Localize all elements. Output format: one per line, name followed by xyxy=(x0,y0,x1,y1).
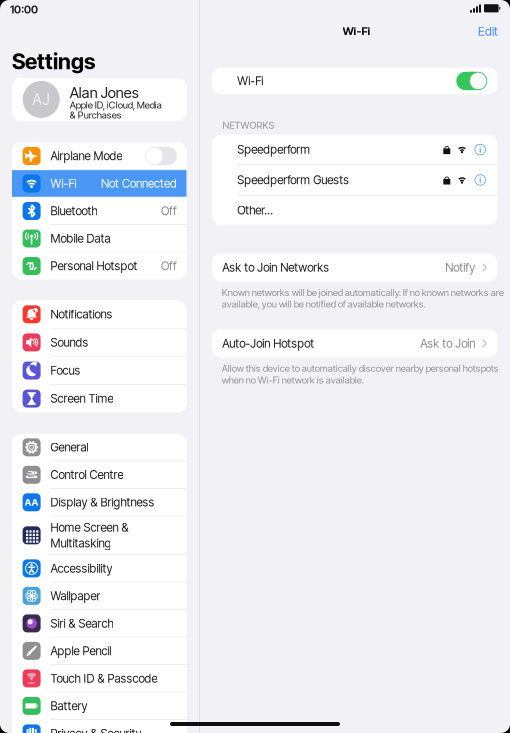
button[interactable]: Wallpaper xyxy=(12,582,186,609)
button[interactable]: Accessibility xyxy=(12,555,186,582)
staticText: Accessibility xyxy=(50,561,112,575)
staticText: 10:00 xyxy=(10,3,38,16)
button[interactable]: Battery xyxy=(12,692,186,719)
staticText: Control Centre xyxy=(50,468,123,482)
button[interactable]: Control Centre xyxy=(12,461,186,488)
staticText: Airplane Mode xyxy=(50,149,122,163)
staticText: Off xyxy=(161,204,177,218)
button[interactable]: Home Screen & xyxy=(12,516,186,554)
staticText: Settings xyxy=(12,48,95,74)
staticText: Auto-Join Hotspot xyxy=(222,336,314,350)
button[interactable]: General xyxy=(12,434,186,461)
staticText: AJ xyxy=(32,90,50,109)
button[interactable]: Mobile Data xyxy=(12,225,186,252)
staticText: Privacy & Security xyxy=(50,726,141,733)
staticText: Multitasking xyxy=(50,536,111,550)
staticText: Wi-Fi xyxy=(50,176,76,191)
staticText: Apple Pencil xyxy=(50,644,111,658)
button[interactable]: Auto-Join Hotspot xyxy=(212,329,497,357)
button[interactable]: Ask to Join Networks xyxy=(212,253,497,281)
button[interactable]: Speedperform Guests xyxy=(212,165,497,195)
staticText: Speedperform xyxy=(237,142,310,157)
staticText: Other... xyxy=(237,203,273,217)
staticText: General xyxy=(50,440,88,454)
staticText: Apple ID, iCloud, Media xyxy=(70,99,162,111)
staticText: Display & Brightness xyxy=(50,495,154,509)
button[interactable]: AA xyxy=(12,489,186,516)
button[interactable]: Personal Hotspot xyxy=(12,253,186,279)
staticText: Touch ID & Passcode xyxy=(50,671,157,685)
button[interactable]: Sounds xyxy=(12,329,186,356)
staticText: Wi-Fi xyxy=(343,24,371,38)
staticText: Speedperform Guests xyxy=(237,173,349,187)
staticText: Battery xyxy=(50,699,87,713)
staticText: Focus xyxy=(50,363,80,378)
button[interactable]: Privacy & Security xyxy=(12,720,186,733)
button[interactable]: Focus xyxy=(12,357,186,384)
staticText: AA xyxy=(25,496,39,508)
staticText: Edit xyxy=(478,24,498,39)
staticText: Notifications xyxy=(50,307,112,321)
staticText: NETWORKS xyxy=(222,119,274,131)
button[interactable]: Siri & Search xyxy=(12,610,186,637)
button[interactable]: Airplane Mode xyxy=(12,143,186,169)
button[interactable]: Notifications xyxy=(12,301,186,328)
button[interactable]: AJ xyxy=(12,78,186,121)
staticText: Off xyxy=(161,259,177,273)
button[interactable]: Speedperform xyxy=(212,135,497,164)
button[interactable]: Touch ID & Passcode xyxy=(12,665,186,692)
staticText: & Purchases xyxy=(70,109,122,121)
staticText: Siri & Search xyxy=(50,616,113,630)
staticText: Alan Jones xyxy=(70,84,139,101)
button[interactable]: Wi-Fi xyxy=(456,72,487,90)
button[interactable]: Edit xyxy=(475,21,501,42)
button[interactable]: Bluetooth xyxy=(12,198,186,224)
staticText: Home Screen & xyxy=(50,520,128,535)
button[interactable]: Wi-Fi xyxy=(12,170,186,197)
button[interactable]: Other... xyxy=(212,195,497,225)
button[interactable]: Apple Pencil xyxy=(12,637,186,664)
staticText: Notify xyxy=(445,260,475,275)
staticText: Mobile Data xyxy=(50,231,110,246)
staticText: Allow this device to automatically disco… xyxy=(222,362,499,386)
staticText: Known networks will be joined automatica… xyxy=(222,287,504,310)
staticText: Bluetooth xyxy=(50,204,97,218)
staticText: Wallpaper xyxy=(50,589,100,603)
staticText: Wi-Fi xyxy=(237,74,263,88)
staticText: Ask to Join Networks xyxy=(222,260,329,275)
staticText: Not Connected xyxy=(101,176,177,191)
button[interactable]: Screen Time xyxy=(12,385,186,412)
staticText: Screen Time xyxy=(50,391,113,406)
staticText: Ask to Join xyxy=(420,336,475,350)
staticText: Personal Hotspot xyxy=(50,259,137,273)
staticText: Sounds xyxy=(50,335,88,349)
